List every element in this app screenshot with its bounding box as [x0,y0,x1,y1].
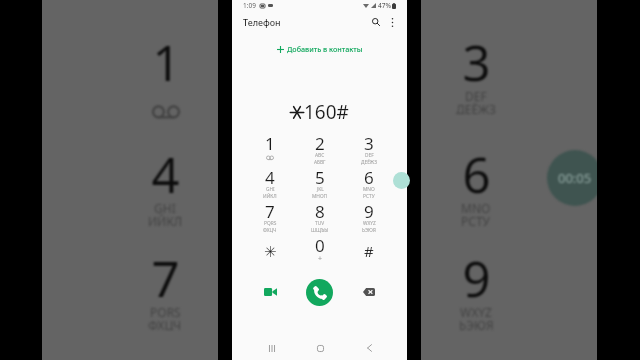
button[interactable]: 4 [245,166,295,200]
staticText: 6 [364,166,374,186]
staticText: 9 [462,245,491,312]
staticText: ✳ [264,243,277,260]
staticText: РСТУ [363,193,375,200]
staticText: 1:09 [243,1,256,10]
staticText: ЬЭЮЯ [362,227,376,234]
button[interactable]: 6 [344,166,394,200]
button[interactable]: 0 [295,234,345,268]
staticText: ФХЦЧ [148,317,182,330]
staticText: ФХЦЧ [263,227,277,234]
staticText: 1 [265,132,275,152]
staticText: ДЕЁЖЗ [456,101,496,114]
button[interactable]: 3 [344,132,394,166]
staticText: ШЩЪЫ [311,227,329,234]
staticText: JKL [317,186,324,193]
staticText: ДЕЁЖЗ [361,159,377,166]
staticText: + [318,254,323,264]
button[interactable]: More options [384,14,400,30]
staticText: MNO [461,200,491,213]
button[interactable]: 5 [295,166,345,200]
staticText: WXYZ [460,304,492,317]
staticText: Добавить в контакты [287,44,363,54]
staticText: 6 [462,141,491,208]
button[interactable]: Backspace [358,281,380,303]
staticText: 5 [315,166,325,186]
staticText: GHI [266,186,275,193]
button[interactable]: Home [309,337,331,359]
staticText: МНОП [312,193,328,200]
staticText: # [364,241,374,261]
staticText: 7 [151,245,180,312]
staticText: ABC [315,152,325,159]
button[interactable]: 1 [245,132,295,166]
staticText: GHI [154,200,176,213]
staticText: ИЙКЛ [263,193,277,200]
button[interactable]: Recents [261,337,283,359]
staticText: TUV [315,220,325,227]
staticText: 00:05 [558,169,592,187]
button[interactable]: Video call [259,281,281,303]
button[interactable]: ✳ [245,241,295,275]
staticText: 7 [265,200,275,220]
staticText: 47% [378,1,391,10]
staticText: 4 [265,166,275,186]
staticText: 4 [151,141,180,208]
staticText: WXYZ [363,220,376,227]
staticText: 8 [315,200,325,220]
staticText: PQRS [150,304,181,317]
button[interactable]: Search [368,14,384,30]
staticText: ЬЭЮЯ [459,317,494,330]
button[interactable]: Добавить в контакты [273,42,367,56]
staticText: 160# [304,99,349,125]
button[interactable]: 7 [245,200,295,234]
staticText: 2 [315,132,325,152]
staticText: РСТУ [461,213,491,226]
staticText: Телефон [243,16,281,28]
staticText: MNO [363,186,375,193]
staticText: 9 [364,200,374,220]
staticText: ИЙКЛ [148,213,183,226]
staticText: 3 [462,29,491,96]
staticText: PQRS [264,220,277,227]
staticText: 1 [152,29,181,96]
button[interactable]: 8 [295,200,345,234]
staticText: DEF [465,88,487,101]
staticText: DEF [365,152,374,159]
staticText: 3 [364,132,374,152]
button[interactable]: Call [306,279,333,306]
staticText: АБВГ [314,159,326,166]
staticText: 0 [315,234,325,254]
button[interactable]: 9 [344,200,394,234]
button[interactable]: Back [358,337,380,359]
button[interactable]: 2 [295,132,345,166]
button[interactable]: # [344,241,394,275]
